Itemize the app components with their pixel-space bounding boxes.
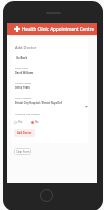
other: Open hospital list — [85, 105, 88, 108]
staticText: Clear Form — [16, 150, 30, 154]
staticText: 08765 79805 — [15, 86, 30, 89]
button[interactable]: Add Doctor — [14, 129, 35, 137]
staticText: Select a Hospital — [15, 97, 32, 100]
button[interactable]: No — [31, 120, 39, 124]
staticText: Go Back — [16, 56, 28, 60]
staticText: Accepting New Patients? — [15, 113, 41, 116]
staticText: David Williams — [15, 71, 34, 74]
staticText: Add Doctor — [15, 45, 37, 50]
staticText: Yes — [18, 120, 23, 124]
button[interactable]: Doctor name — [15, 67, 34, 74]
button[interactable]: Yes — [14, 120, 23, 124]
button[interactable]: Go Back — [16, 56, 28, 60]
button[interactable]: Clinic logo — [7, 23, 97, 35]
staticText: Bristol City Hospital / Bristol Royal In… — [15, 101, 62, 104]
other: Clinic logo — [14, 26, 20, 32]
staticText: No — [35, 120, 39, 124]
staticText: Health Clinic Appointment Centre — [22, 26, 95, 32]
staticText: Doctor name — [15, 67, 28, 70]
staticText: Add Doctor — [17, 131, 32, 135]
button[interactable]: Clear Form — [14, 148, 31, 155]
button[interactable]: Select a Hospital — [15, 97, 62, 104]
staticText: Contact Number — [15, 82, 32, 85]
button[interactable]: Contact Number — [15, 82, 32, 89]
